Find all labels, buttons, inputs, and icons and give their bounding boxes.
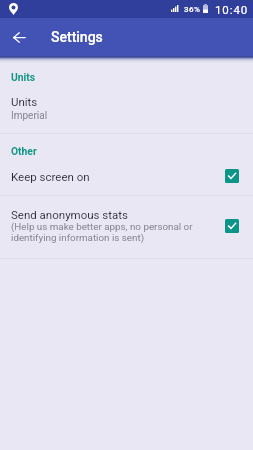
other: Location	[9, 3, 18, 15]
staticText: Other	[11, 145, 37, 157]
button[interactable]: Units	[0, 83, 253, 133]
button[interactable]: Toggle Keep screen on	[225, 169, 239, 183]
staticText: Units	[11, 71, 36, 83]
staticText: 36%	[184, 5, 201, 14]
staticText: (Help us make better apps, no personal o…	[11, 221, 193, 243]
staticText: Settings	[51, 29, 103, 45]
button[interactable]: Send anonymous stats	[0, 196, 253, 258]
staticText: Units	[11, 95, 38, 108]
other: Battery	[203, 4, 208, 13]
staticText: 10:40	[215, 3, 249, 16]
staticText: Imperial	[11, 110, 48, 122]
button[interactable]: Back	[0, 18, 38, 56]
staticText: Send anonymous stats	[11, 208, 128, 221]
button[interactable]: Toggle Send anonymous stats	[225, 219, 239, 233]
button[interactable]: Keep screen on	[0, 157, 253, 195]
staticText: Keep screen on	[11, 170, 90, 183]
